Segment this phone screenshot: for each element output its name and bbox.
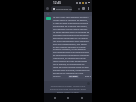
staticText: Sources <box>53 75 61 78</box>
staticText: cents millions de chats domestiques <box>53 60 91 63</box>
staticText: il s'agit du petit mammifere carnivore <box>53 22 91 25</box>
staticText: et leur capacite naturelle a chasser <box>53 46 91 49</box>
staticText: Europe et en Amerique du Nord. <box>53 72 91 75</box>
button[interactable]: Home <box>65 95 71 101</box>
button[interactable]: Tabs <box>82 7 85 10</box>
staticText: les petits rongeurs, ce qui explique <box>53 48 91 51</box>
button[interactable]: Try again <box>68 75 79 78</box>
staticText: people, places, or facts. <box>47 91 89 94</box>
button[interactable]: Account <box>46 7 49 10</box>
staticText: domestique de la famille des felides, <box>53 25 91 28</box>
staticText: Try again <box>69 75 78 78</box>
staticText: Rate it <box>85 75 91 78</box>
staticText: choses selon le contexte. En general, <box>53 19 91 22</box>
staticText: Le mot "chat" peut designer plusieurs <box>53 16 91 19</box>
button[interactable]: Share <box>77 7 80 10</box>
button[interactable]: More options <box>87 6 90 11</box>
staticText: sur la planete, et la population ne <box>53 63 91 66</box>
staticText: chat.openai.com <box>56 8 72 11</box>
staticText: Les chats domestiques sont apprecies <box>53 40 91 43</box>
staticText: tres repandu comme animal familier. <box>53 28 91 31</box>
staticText: produce inaccurate information about <box>47 88 89 91</box>
staticText: 12:45 <box>53 1 62 5</box>
staticText: de nombreuses civilisations humaines. <box>53 54 91 57</box>
button[interactable]: Scroll to bottom <box>87 82 90 85</box>
staticText: messages instantanes entre plusieurs <box>53 34 91 37</box>
staticText: leur domestication tres ancienne dans <box>53 51 91 54</box>
staticText: pour leur independance, leur agilite <box>53 43 91 46</box>
staticText: cesse de croitre chaque annee un peu <box>53 66 91 69</box>
button[interactable]: chat.openai.com <box>51 6 72 12</box>
staticText: Free Research Preview. ChatGPT may <box>47 85 89 88</box>
staticText: Le terme designe aussi un echange de <box>53 31 91 34</box>
staticText: partout dans le monde, notamment en <box>53 69 91 72</box>
staticText: Aujourd'hui, on recense plus de six <box>53 57 91 60</box>
button[interactable]: Back <box>52 95 58 101</box>
staticText: personnes connectees sur un reseau. <box>53 37 91 40</box>
button[interactable]: Recent apps <box>79 95 85 101</box>
